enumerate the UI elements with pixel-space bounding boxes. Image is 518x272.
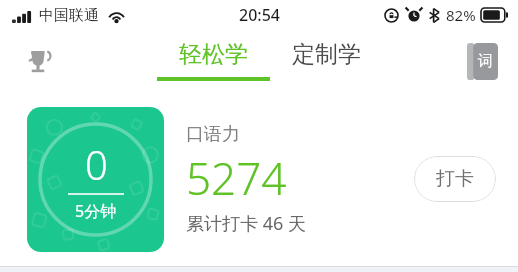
staticText: 5分钟 (75, 200, 117, 222)
button[interactable]: 定制学 (292, 40, 361, 81)
staticText: 0 (85, 137, 108, 191)
staticText: 打卡 (436, 167, 474, 191)
button[interactable]: 轻松学 (157, 40, 270, 81)
button[interactable]: Achievements (14, 37, 62, 85)
button[interactable]: Dictionary (460, 39, 504, 83)
staticText: 82% (446, 5, 476, 25)
button[interactable]: 0 (27, 107, 164, 252)
staticText: 累计打卡 46 天 (186, 211, 306, 236)
staticText: 轻松学 (179, 40, 248, 69)
staticText: 5274 (186, 148, 287, 208)
staticText: 定制学 (292, 40, 361, 69)
staticText: 20:54 (239, 4, 280, 26)
staticText: 口语力 (186, 123, 240, 146)
staticText: 词 (478, 52, 493, 71)
button[interactable]: 打卡 (414, 156, 496, 202)
staticText: 中国联通 (39, 6, 99, 25)
